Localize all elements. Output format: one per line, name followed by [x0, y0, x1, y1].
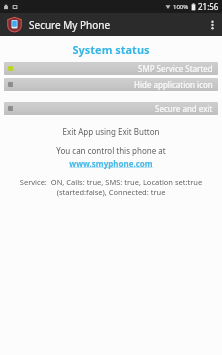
staticText: You can control this phone at [0, 145, 222, 156]
staticText: Secure and exit [155, 103, 213, 114]
button[interactable]: SMP Service Started [4, 62, 218, 75]
staticText: 21:56 [198, 1, 219, 12]
button[interactable]: More options [202, 13, 222, 36]
staticText: Hide application icon [134, 79, 213, 90]
staticText: Exit App using Exit Button [0, 126, 222, 137]
button[interactable]: Hide application icon [4, 78, 218, 91]
staticText: Secure My Phone [29, 18, 111, 32]
staticText: 100% [173, 3, 189, 11]
staticText: www.smyphone.com [69, 158, 153, 169]
staticText: System status [0, 42, 222, 57]
staticText: SMP Service Started [138, 63, 213, 74]
button[interactable]: Secure and exit [4, 102, 218, 115]
staticText: Service: ON, Calls: true, SMS: true, Loc… [4, 177, 218, 197]
button[interactable]: www.smyphone.com [0, 158, 222, 169]
